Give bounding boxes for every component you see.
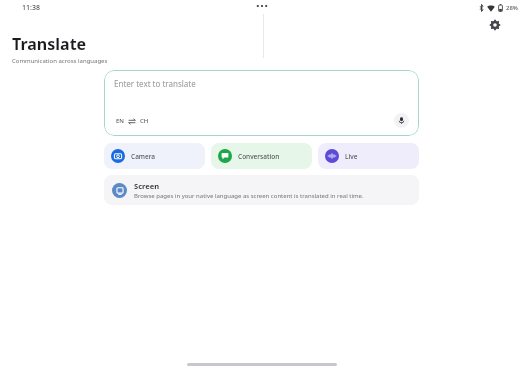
staticText: Enter text to translate [114,78,196,89]
staticText: Communication across languages [12,57,108,65]
staticText: Browse pages in your native language as … [134,192,364,200]
staticText: Translate [12,33,87,55]
button[interactable]: Enter text to translate [104,70,419,136]
staticText: 11:38 [22,3,40,13]
staticText: CH [140,117,149,125]
button[interactable]: EN [114,115,151,127]
staticText: Screen [134,181,160,191]
button[interactable]: Voice input [394,113,409,128]
staticText: Conversation [238,152,280,161]
button[interactable]: Live [318,143,419,169]
staticText: 28% [506,4,518,12]
button[interactable]: Screen [104,175,419,205]
button[interactable]: Settings [484,14,506,36]
staticText: Live [345,152,358,161]
staticText: Camera [131,152,156,161]
button[interactable]: Conversation [211,143,312,169]
button[interactable]: Camera [104,143,205,169]
staticText: EN [116,117,124,125]
